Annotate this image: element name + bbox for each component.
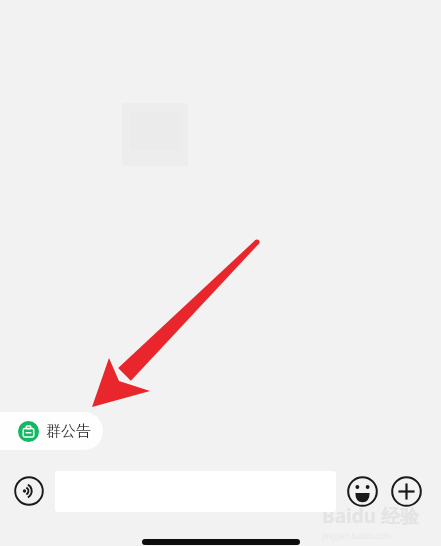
button[interactable]: Emoji [345, 474, 379, 508]
button[interactable]: Voice input [13, 475, 45, 507]
button[interactable]: 群公告 [0, 412, 103, 450]
staticText: Baidu 经验 [322, 503, 419, 529]
button[interactable]: More options [389, 474, 423, 508]
staticText: 群公告 [46, 422, 91, 441]
